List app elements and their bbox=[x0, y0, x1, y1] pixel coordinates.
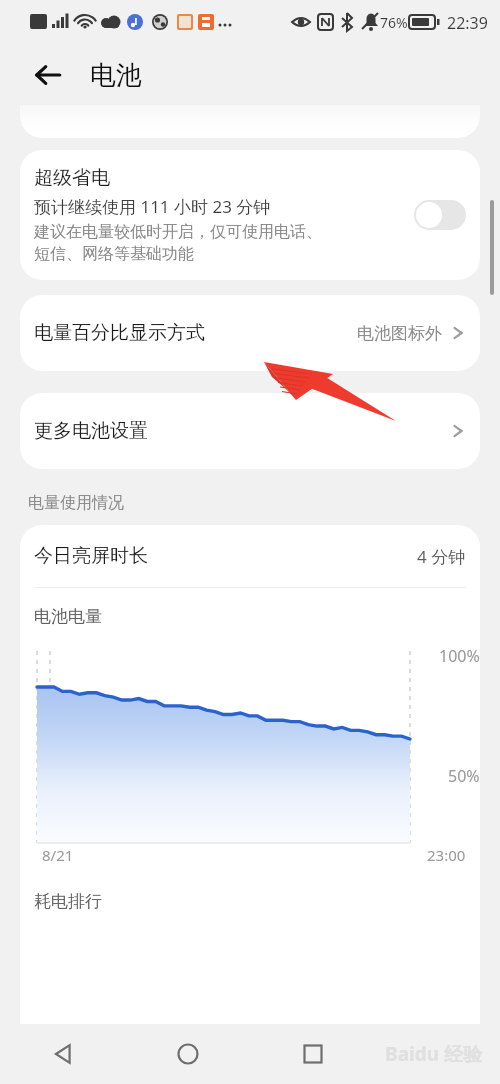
staticText: 更多电池设置 bbox=[34, 419, 450, 443]
staticText: 预计继续使用 111 小时 23 分钟 bbox=[34, 195, 271, 218]
staticText: 超级省电 bbox=[34, 166, 110, 190]
staticText: 电量使用情况 bbox=[28, 493, 124, 513]
staticText: 耗电排行 bbox=[34, 891, 102, 912]
staticText: 电池 bbox=[90, 59, 142, 92]
button[interactable]: Back bbox=[0, 1024, 125, 1084]
staticText: 22:39 bbox=[447, 12, 488, 34]
staticText: 23:00 bbox=[427, 845, 466, 865]
staticText: 电量百分比显示方式 bbox=[34, 321, 357, 345]
staticText: 今日亮屏时长 bbox=[34, 544, 417, 568]
button[interactable]: 今日亮屏时长 bbox=[20, 525, 480, 587]
staticText: Baidu 经验 bbox=[385, 1041, 482, 1067]
button[interactable]: Super power saving toggle bbox=[414, 200, 466, 230]
staticText: 100% bbox=[439, 645, 480, 667]
button[interactable]: 更多电池设置 bbox=[20, 393, 480, 469]
button[interactable]: Home bbox=[125, 1024, 250, 1084]
staticText: 8/21 bbox=[42, 845, 74, 865]
staticText: 建议在电量较低时开启，仅可使用电话、 短信、网络等基础功能 bbox=[34, 222, 322, 264]
button[interactable]: Recent apps bbox=[250, 1024, 375, 1084]
staticText: 76% bbox=[380, 13, 408, 32]
staticText: 电池电量 bbox=[34, 606, 102, 627]
staticText: 电池图标外 bbox=[357, 323, 442, 344]
staticText: 50% bbox=[448, 765, 480, 787]
button[interactable]: Back bbox=[22, 49, 74, 101]
button[interactable]: 电量百分比显示方式 bbox=[20, 295, 480, 371]
staticText: 4 分钟 bbox=[417, 545, 466, 568]
button[interactable]: 超级省电 bbox=[20, 150, 480, 280]
